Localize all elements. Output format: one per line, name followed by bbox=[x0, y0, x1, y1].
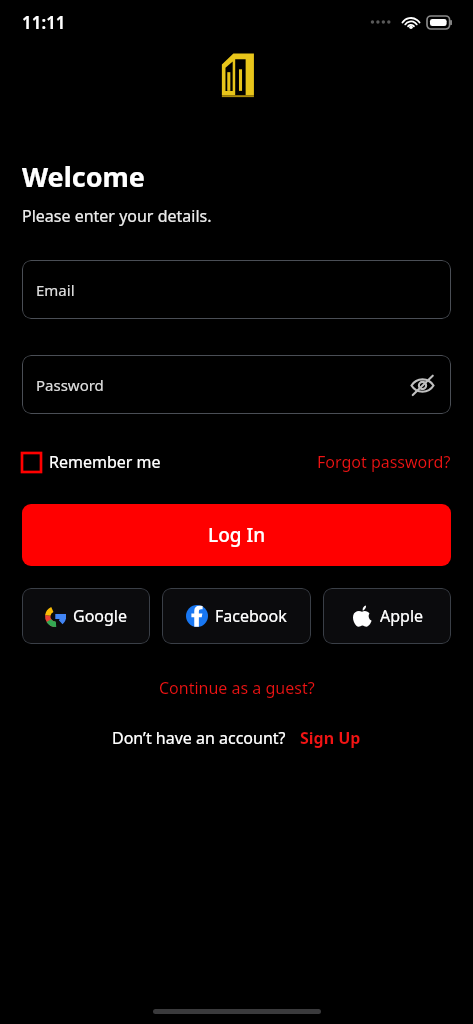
staticText: Email bbox=[36, 280, 75, 300]
staticText: 11:11 bbox=[22, 11, 66, 34]
staticText: Google bbox=[73, 605, 128, 627]
button[interactable]: Apple bbox=[323, 588, 451, 644]
button[interactable]: Facebook bbox=[162, 588, 311, 644]
button[interactable]: Email bbox=[22, 260, 451, 319]
button[interactable]: Show password bbox=[405, 368, 439, 402]
staticText: Please enter your details. bbox=[22, 205, 212, 227]
staticText: Remember me bbox=[49, 451, 161, 473]
button[interactable]: Forgot password? bbox=[317, 451, 451, 473]
staticText: Continue as a guest? bbox=[159, 677, 315, 699]
staticText: Don’t have an account? bbox=[112, 727, 286, 749]
staticText: Apple bbox=[380, 605, 424, 627]
staticText: Welcome bbox=[22, 158, 145, 195]
staticText: Log In bbox=[208, 522, 266, 548]
button[interactable]: Sign Up bbox=[300, 727, 361, 749]
button[interactable]: Log In bbox=[22, 504, 451, 566]
staticText: Forgot password? bbox=[317, 451, 451, 473]
staticText: Password bbox=[36, 375, 104, 395]
button[interactable]: Remember me bbox=[22, 451, 161, 473]
staticText: Facebook bbox=[215, 605, 287, 627]
button[interactable]: Continue as a guest? bbox=[151, 674, 323, 702]
button[interactable]: Google bbox=[22, 588, 150, 644]
staticText: Sign Up bbox=[300, 727, 361, 749]
button[interactable]: Password bbox=[22, 355, 451, 414]
